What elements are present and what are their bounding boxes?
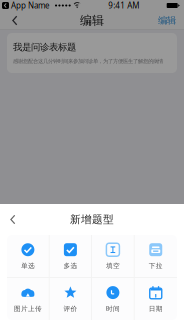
button[interactable]: 单选 (7, 235, 49, 277)
staticText: 评价 (63, 305, 77, 313)
staticText: 9:41 AM (108, 0, 139, 11)
staticText: 感谢您配合这几分钟时间来参加问诊单，为了方便医生了解您的病情 (13, 58, 163, 65)
button[interactable]: 填空 (92, 235, 134, 277)
button[interactable]: 时间 (92, 278, 134, 320)
button[interactable]: 多选 (49, 235, 92, 277)
button[interactable]: 编辑 (154, 11, 180, 30)
staticText: 时间 (106, 305, 120, 313)
button[interactable]: 下拉 (134, 235, 177, 277)
staticText: 单选 (21, 262, 35, 270)
button[interactable]: 日期 (134, 278, 177, 320)
button[interactable]: 图片上传 (7, 278, 49, 320)
button[interactable]: Back (4, 11, 26, 30)
staticText: 我是问诊表标题 (13, 41, 76, 53)
staticText: 编辑 (80, 13, 104, 28)
staticText: 图片上传 (14, 305, 42, 313)
staticText: App Name (11, 0, 50, 11)
staticText: 编辑 (158, 15, 176, 26)
staticText: 填空 (106, 262, 120, 270)
staticText: 下拉 (149, 262, 163, 270)
staticText: 多选 (63, 262, 77, 270)
button[interactable]: Back (2, 208, 24, 230)
staticText: 新增题型 (70, 213, 114, 226)
button[interactable]: 评价 (49, 278, 92, 320)
staticText: 日期 (149, 305, 163, 313)
